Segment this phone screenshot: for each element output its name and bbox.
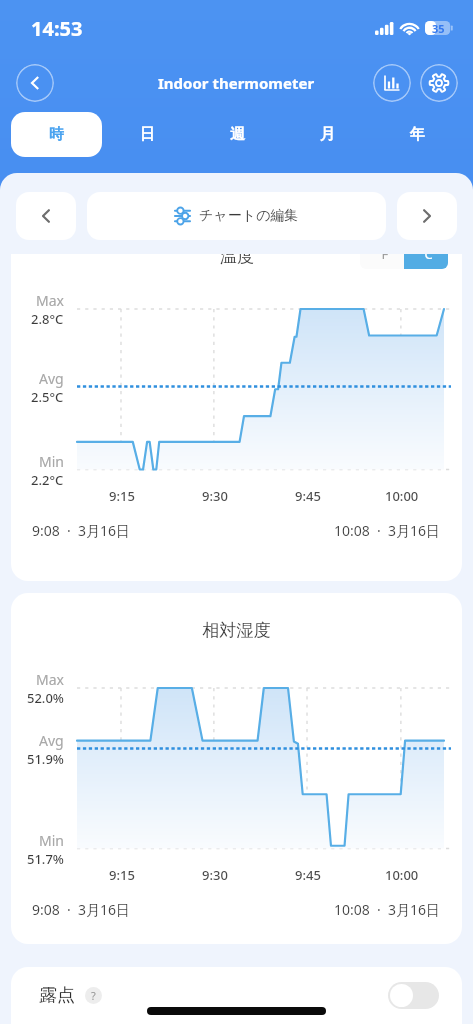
staticText: 14:53 — [31, 15, 83, 42]
button[interactable]: Statistics — [373, 64, 411, 102]
staticText: チャートの編集 — [199, 207, 299, 225]
staticText: 相対湿度 — [11, 620, 462, 641]
staticText: 10:08 · 3月16日 — [334, 900, 441, 919]
staticText: 9:30 — [202, 866, 228, 884]
button[interactable]: 日 — [102, 112, 192, 157]
staticText: 51.9% — [27, 750, 64, 768]
staticText: 9:45 — [295, 866, 321, 884]
staticText: °F — [376, 254, 389, 263]
staticText: 9:45 — [295, 487, 321, 505]
button[interactable]: Help — [85, 987, 102, 1004]
staticText: Indoor thermometer — [158, 73, 315, 93]
staticText: Avg — [39, 731, 64, 750]
staticText: 2.8°C — [31, 310, 64, 328]
staticText: 日 — [140, 125, 155, 144]
staticText: 9:30 — [202, 487, 228, 505]
staticText: 月 — [320, 125, 335, 144]
staticText: 2.5°C — [31, 388, 64, 406]
button[interactable]: 時 — [11, 112, 102, 157]
staticText: 10:00 — [385, 866, 419, 884]
button[interactable]: Toggle dew point — [388, 982, 439, 1009]
staticText: 52.0% — [27, 689, 64, 707]
staticText: 9:08 · 3月16日 — [32, 521, 131, 540]
staticText: 露点 — [39, 984, 75, 1007]
staticText: Min — [39, 831, 64, 850]
button[interactable]: Next period — [397, 192, 457, 240]
button[interactable]: 月 — [282, 112, 372, 157]
staticText: Max — [36, 291, 64, 310]
staticText: Avg — [39, 369, 64, 388]
staticText: 9:08 · 3月16日 — [32, 900, 131, 919]
staticText: °C — [419, 254, 433, 263]
staticText: ? — [91, 988, 96, 1003]
staticText: 10:00 — [385, 487, 419, 505]
staticText: 9:15 — [109, 487, 135, 505]
button[interactable]: 週 — [192, 112, 282, 157]
button[interactable]: Settings — [420, 64, 458, 102]
staticText: 35 — [432, 21, 445, 35]
button[interactable]: Back — [16, 64, 54, 102]
staticText: 9:15 — [109, 866, 135, 884]
staticText: 51.7% — [27, 850, 64, 868]
button[interactable]: Previous period — [16, 192, 76, 240]
staticText: Min — [39, 452, 64, 471]
staticText: 時 — [49, 125, 64, 144]
staticText: Max — [36, 670, 64, 689]
staticText: 2.2°C — [31, 471, 64, 489]
staticText: 10:08 · 3月16日 — [334, 521, 441, 540]
button[interactable]: チャートの編集 — [87, 192, 386, 240]
staticText: 年 — [410, 125, 425, 144]
button[interactable]: 年 — [372, 112, 462, 157]
staticText: 週 — [230, 125, 245, 144]
button[interactable]: °F — [360, 254, 448, 269]
staticText: 温度 — [220, 254, 254, 267]
